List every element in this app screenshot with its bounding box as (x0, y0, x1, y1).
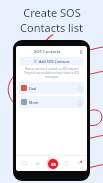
button[interactable]: More options (77, 48, 84, 55)
button[interactable]: Dad (19, 82, 84, 94)
staticText: Dad (29, 86, 37, 91)
staticText: How to add these contacts as SOS helpers… (25, 67, 79, 71)
button[interactable]: Contacts (73, 155, 86, 171)
staticText: SOS (51, 163, 56, 166)
button[interactable]: Select Mom (77, 100, 82, 105)
staticText: Create SOS (23, 5, 81, 20)
button[interactable]: Drive (31, 155, 44, 171)
staticText: Add SOS Contacts (39, 59, 70, 64)
staticText: Mom (29, 100, 39, 105)
button[interactable]: Add SOS Contacts (20, 57, 83, 65)
button[interactable]: Reports (60, 155, 73, 171)
staticText: They will stay available to have alerts … (22, 71, 81, 79)
button[interactable]: Select Dad (77, 86, 82, 91)
button[interactable]: SOS emergency (48, 159, 58, 169)
button[interactable]: Mom (19, 96, 84, 108)
staticText: SOS Contacts (34, 49, 61, 55)
button[interactable]: Chats (17, 155, 31, 171)
staticText: Contacts list (20, 20, 83, 35)
